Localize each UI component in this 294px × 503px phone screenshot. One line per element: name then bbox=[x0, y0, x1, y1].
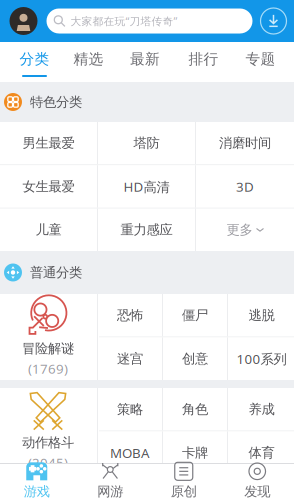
staticText: 分类 bbox=[19, 50, 49, 68]
staticText: 原创 bbox=[171, 483, 197, 500]
staticText: 普通分类 bbox=[30, 264, 82, 281]
staticText: 3D bbox=[236, 178, 254, 195]
staticText: 迷宫 bbox=[117, 351, 143, 367]
staticText: 恐怖 bbox=[117, 307, 143, 323]
button[interactable]: 策略 bbox=[98, 388, 162, 430]
button[interactable]: 消磨时间 bbox=[196, 122, 294, 164]
staticText: 僵尸 bbox=[182, 307, 208, 323]
staticText: 最新 bbox=[130, 50, 160, 68]
staticText: (2045) bbox=[28, 454, 68, 471]
button[interactable]: 更多 bbox=[196, 209, 294, 251]
button[interactable]: 动作格斗 bbox=[0, 388, 97, 474]
button[interactable]: 女生最爱 bbox=[0, 165, 97, 208]
button[interactable]: 3D bbox=[196, 165, 294, 208]
button[interactable]: 冒险解谜 bbox=[0, 294, 97, 380]
button[interactable]: 塔防 bbox=[98, 122, 195, 164]
button[interactable]: 网游 bbox=[73, 464, 147, 503]
staticText: 更多 bbox=[226, 222, 252, 238]
staticText: 专题 bbox=[245, 50, 275, 68]
staticText: 养成 bbox=[248, 401, 274, 417]
button[interactable]: 重力感应 bbox=[98, 209, 195, 251]
staticText: 大家都在玩“刀塔传奇” bbox=[70, 14, 177, 28]
button[interactable]: 养成 bbox=[228, 388, 294, 430]
staticText: (1769) bbox=[28, 360, 68, 377]
button[interactable]: 僵尸 bbox=[163, 294, 227, 336]
button[interactable]: HD高清 bbox=[98, 165, 195, 208]
staticText: 排行 bbox=[188, 50, 218, 68]
staticText: 塔防 bbox=[133, 135, 159, 151]
button[interactable]: 儿童 bbox=[0, 209, 97, 251]
button[interactable]: 最新 bbox=[116, 42, 174, 82]
button[interactable]: 大家都在玩“刀塔传奇” bbox=[46, 8, 252, 33]
staticText: 精选 bbox=[73, 50, 103, 68]
staticText: 逃脱 bbox=[248, 307, 274, 323]
staticText: 角色 bbox=[182, 401, 208, 417]
staticText: HD高清 bbox=[123, 178, 169, 195]
button[interactable]: 游戏 bbox=[0, 464, 73, 503]
staticText: 特色分类 bbox=[30, 94, 82, 110]
button[interactable]: 卡牌 bbox=[163, 431, 227, 474]
staticText: 冒险解谜 bbox=[22, 340, 74, 357]
button[interactable]: 角色 bbox=[163, 388, 227, 430]
button[interactable]: 分类 bbox=[8, 42, 61, 82]
staticText: 重力感应 bbox=[120, 222, 172, 238]
button[interactable]: Downloads bbox=[260, 8, 286, 34]
button[interactable]: 迷宫 bbox=[98, 337, 162, 380]
button[interactable]: 发现 bbox=[220, 464, 294, 503]
staticText: 动作格斗 bbox=[22, 434, 74, 451]
button[interactable]: 男生最爱 bbox=[0, 122, 97, 164]
button[interactable]: 原创 bbox=[147, 464, 220, 503]
staticText: 创意 bbox=[182, 351, 208, 367]
staticText: 女生最爱 bbox=[22, 178, 74, 195]
staticText: 卡牌 bbox=[182, 445, 208, 461]
button[interactable]: 逃脱 bbox=[228, 294, 294, 336]
staticText: 消磨时间 bbox=[219, 135, 271, 151]
staticText: 游戏 bbox=[24, 483, 50, 500]
button[interactable]: 专题 bbox=[233, 42, 288, 82]
staticText: 体育 bbox=[248, 445, 274, 461]
button[interactable]: Profile bbox=[9, 7, 37, 35]
staticText: 发现 bbox=[244, 483, 270, 500]
button[interactable]: 精选 bbox=[61, 42, 116, 82]
button[interactable]: 100系列 bbox=[228, 337, 294, 380]
button[interactable]: MOBA bbox=[98, 431, 162, 474]
staticText: 网游 bbox=[97, 483, 123, 500]
button[interactable]: 体育 bbox=[228, 431, 294, 474]
staticText: MOBA bbox=[110, 444, 150, 462]
button[interactable]: 排行 bbox=[174, 42, 233, 82]
button[interactable]: 恐怖 bbox=[98, 294, 162, 336]
staticText: 策略 bbox=[117, 401, 143, 417]
staticText: 100系列 bbox=[236, 350, 286, 368]
staticText: 男生最爱 bbox=[22, 135, 74, 151]
button[interactable]: 创意 bbox=[163, 337, 227, 380]
staticText: 儿童 bbox=[35, 222, 61, 238]
